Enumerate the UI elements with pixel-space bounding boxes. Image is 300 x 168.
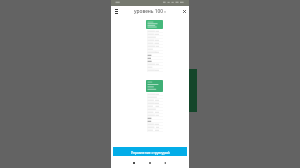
button[interactable] — [146, 36, 163, 39]
button[interactable] — [146, 126, 163, 129]
button[interactable] — [146, 20, 163, 29]
button[interactable] — [146, 69, 163, 72]
button[interactable] — [146, 63, 163, 66]
button[interactable] — [146, 60, 163, 63]
button[interactable] — [146, 54, 163, 57]
button[interactable]: Recents — [131, 160, 136, 165]
button[interactable] — [146, 120, 163, 123]
button[interactable] — [146, 66, 163, 69]
button[interactable]: Home — [147, 160, 152, 165]
button[interactable] — [146, 80, 163, 92]
button[interactable] — [146, 42, 163, 45]
button[interactable]: Управление структурой — [113, 147, 187, 157]
button[interactable] — [146, 114, 163, 117]
button[interactable] — [146, 99, 163, 102]
button[interactable] — [146, 45, 163, 48]
button[interactable]: Back — [162, 160, 167, 165]
button[interactable] — [146, 123, 163, 126]
button[interactable] — [146, 30, 163, 33]
button[interactable] — [146, 105, 163, 108]
button[interactable] — [146, 96, 163, 99]
button[interactable] — [146, 108, 163, 111]
button[interactable]: Menu — [113, 8, 120, 15]
button[interactable] — [146, 51, 163, 54]
staticText: уровень 100 — [134, 8, 163, 15]
staticText: Управление структурой — [131, 150, 170, 154]
button[interactable] — [146, 39, 163, 42]
button[interactable] — [146, 117, 163, 120]
button[interactable]: Close — [180, 7, 188, 15]
button[interactable] — [146, 33, 163, 36]
button[interactable] — [146, 57, 163, 60]
button[interactable] — [146, 129, 163, 132]
button[interactable] — [146, 93, 163, 96]
button[interactable] — [146, 102, 163, 105]
button[interactable] — [146, 111, 163, 114]
button[interactable] — [146, 48, 163, 51]
button[interactable]: уровень 100 — [120, 8, 180, 15]
